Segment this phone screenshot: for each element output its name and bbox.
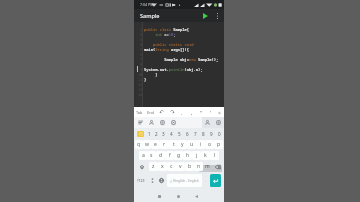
button[interactable]: Save [213,117,224,128]
button[interactable]: , [187,107,197,117]
button[interactable]: k [201,151,210,160]
button[interactable]: Change language [157,172,166,189]
staticText: 5 [135,47,142,52]
button[interactable]: 0 [215,128,223,139]
button[interactable]: Paste [157,117,168,128]
staticText: p [217,141,221,148]
button[interactable]: Undo [156,107,167,117]
button[interactable]: " [197,107,206,117]
button[interactable]: c [167,162,176,171]
button[interactable]: Enter [210,174,221,187]
button[interactable]: v [176,162,185,171]
staticText: q [137,141,141,148]
staticText: s [150,152,153,159]
staticText: 5 [178,131,181,137]
button[interactable]: q [135,140,143,149]
button[interactable]: b [185,162,194,171]
staticText: < [218,109,221,116]
staticText: 3 [162,131,165,137]
button[interactable]: Shift [134,161,149,172]
button[interactable]: z [149,162,158,171]
button[interactable]: Select text [202,117,213,128]
staticText: 9 [210,131,213,137]
button[interactable]: m [203,161,212,172]
staticText: 8 [202,131,205,137]
staticText: } [144,72,158,77]
button[interactable]: y [178,140,187,149]
staticText: Sample obj=new Sample(); [144,57,219,62]
staticText: c [170,163,173,170]
button[interactable]: Home [173,191,184,202]
button[interactable]: Hinglish - English [167,174,202,187]
staticText: b [188,163,192,170]
staticText: k [204,152,207,159]
button[interactable]: n [194,162,203,171]
button[interactable]: h [183,151,192,160]
button[interactable]: l [210,151,219,160]
button[interactable]: Run [199,9,212,22]
staticText: 7:04 PM [140,2,154,7]
staticText: r [163,141,166,148]
button[interactable]: 5 [175,128,183,139]
button[interactable]: i [196,140,205,149]
button[interactable]: u [187,140,196,149]
button[interactable]: 9 [207,128,215,139]
button[interactable]: Sample [140,12,160,20]
button[interactable]: g [174,151,183,160]
staticText: System.out.println(obj.a); [144,67,203,72]
button[interactable]: More options [212,10,223,21]
button[interactable]: Clear clipboard [168,117,179,128]
button[interactable]: d [156,151,165,160]
staticText: u [190,141,194,148]
button[interactable]: t [169,140,178,149]
button[interactable]: Menu [135,117,146,128]
staticText: main(String args[]){ [144,47,190,52]
button[interactable]: e [151,140,160,149]
button[interactable]: Account [146,117,157,128]
button[interactable]: < [215,107,224,117]
button[interactable]: 1 [146,128,153,139]
staticText: g [177,152,181,159]
button[interactable]: 7 [191,128,199,139]
staticText: ?123 [137,178,145,183]
button[interactable]: Redo [167,107,177,117]
staticText: e [154,141,157,148]
button[interactable]: a [139,151,147,160]
button[interactable]: Symbols [148,172,157,189]
staticText: 6 [135,52,142,57]
staticText: o [208,141,212,148]
button[interactable]: w [143,140,151,149]
button[interactable]: 4 [167,128,175,139]
button[interactable]: Backspace [212,161,224,172]
staticText: y [181,141,184,148]
button[interactable]: 3 [160,128,167,139]
button[interactable]: End [145,107,156,117]
button[interactable]: p [214,140,223,149]
staticText: h [186,152,190,159]
button[interactable]: Recent apps [154,191,165,202]
button[interactable]: r [160,140,169,149]
staticText: 6 [186,131,189,137]
button[interactable]: 2 [153,128,160,139]
button[interactable]: f [165,151,174,160]
staticText: 7 [194,131,197,137]
staticText: } [144,77,147,82]
button[interactable]: Tab [134,107,145,117]
button[interactable]: o [205,140,214,149]
staticText: 2 [155,131,158,137]
staticText: Hinglish - English [173,179,199,183]
staticText: public static void [144,42,194,47]
button[interactable]: Emoji [137,131,144,137]
button[interactable]: ' [206,107,215,117]
button[interactable]: x [158,162,167,171]
button[interactable]: 6 [183,128,191,139]
button[interactable]: Back [191,191,202,202]
button[interactable]: 8 [199,128,207,139]
staticText: 11 [135,77,142,82]
staticText: " [200,109,203,116]
button[interactable]: ?123 [134,172,148,189]
button[interactable]: s [147,151,156,160]
button[interactable]: . [177,107,187,117]
button[interactable]: j [192,151,201,160]
